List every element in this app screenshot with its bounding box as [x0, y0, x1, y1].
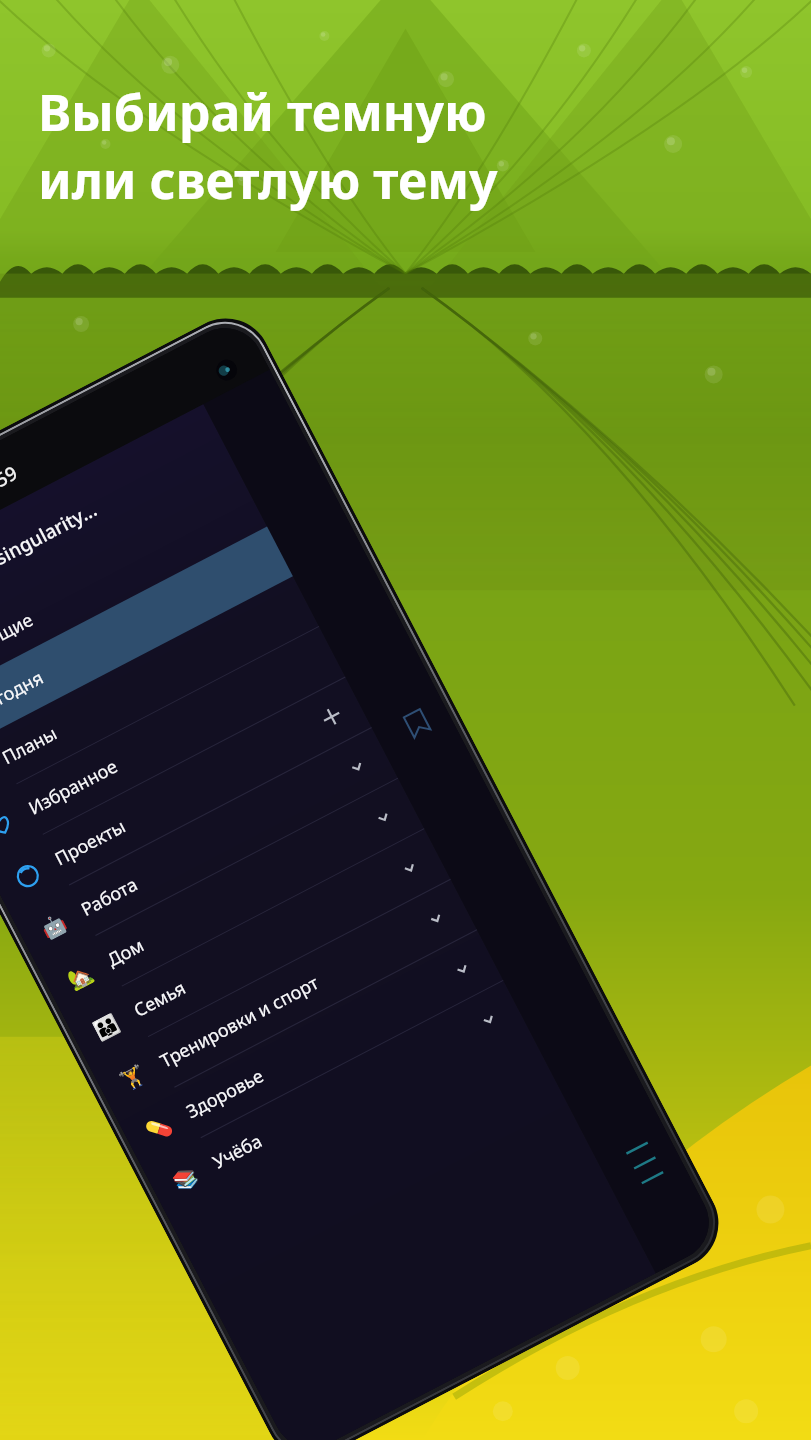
button[interactable]: Развернуть: [334, 744, 380, 790]
button[interactable]: cat.from.singularity...: [0, 413, 238, 658]
button[interactable]: 👪: [63, 829, 450, 1067]
button[interactable]: Развернуть: [440, 946, 485, 992]
staticText: 📚: [169, 1162, 202, 1194]
button[interactable]: Избранное: [0, 627, 345, 864]
button[interactable]: 🏡: [37, 778, 424, 1016]
staticText: 🏋: [116, 1061, 149, 1093]
staticText: Работа: [77, 764, 348, 922]
button[interactable]: Развернуть: [413, 896, 459, 942]
button[interactable]: Проекты: [0, 677, 371, 915]
button[interactable]: Развернуть: [466, 997, 512, 1043]
button[interactable]: Развернуть: [361, 795, 407, 841]
staticText: Выбирай темную: [38, 78, 487, 146]
button[interactable]: Сегодня: [0, 527, 293, 764]
staticText: 09:59: [0, 460, 22, 505]
button[interactable]: Входящие: [0, 477, 267, 714]
staticText: Тренировки и спорт: [156, 916, 427, 1073]
button[interactable]: 🏋: [90, 880, 477, 1117]
staticText: Учёба: [208, 1017, 480, 1175]
staticText: Семья: [129, 865, 401, 1023]
staticText: 👪: [90, 1011, 123, 1043]
staticText: Избранное: [24, 647, 326, 821]
staticText: Дом: [103, 815, 374, 972]
button[interactable]: 💊: [116, 930, 503, 1168]
staticText: 🏡: [64, 960, 96, 992]
button[interactable]: Добавить проект: [308, 694, 354, 739]
staticText: или светлую тему: [38, 146, 498, 214]
button[interactable]: Планы: [0, 576, 319, 814]
button[interactable]: Развернуть: [387, 845, 433, 891]
staticText: Проекты: [50, 714, 322, 871]
staticText: Входящие: [0, 498, 248, 671]
staticText: 💊: [143, 1112, 175, 1144]
staticText: 🤖: [37, 910, 70, 942]
staticText: Сегодня: [0, 547, 273, 720]
button[interactable]: 🤖: [11, 728, 398, 966]
staticText: Планы: [0, 597, 299, 770]
button[interactable]: 📚: [142, 981, 529, 1218]
staticText: cat.from.singularity...: [0, 496, 102, 609]
staticText: Здоровье: [182, 967, 453, 1124]
